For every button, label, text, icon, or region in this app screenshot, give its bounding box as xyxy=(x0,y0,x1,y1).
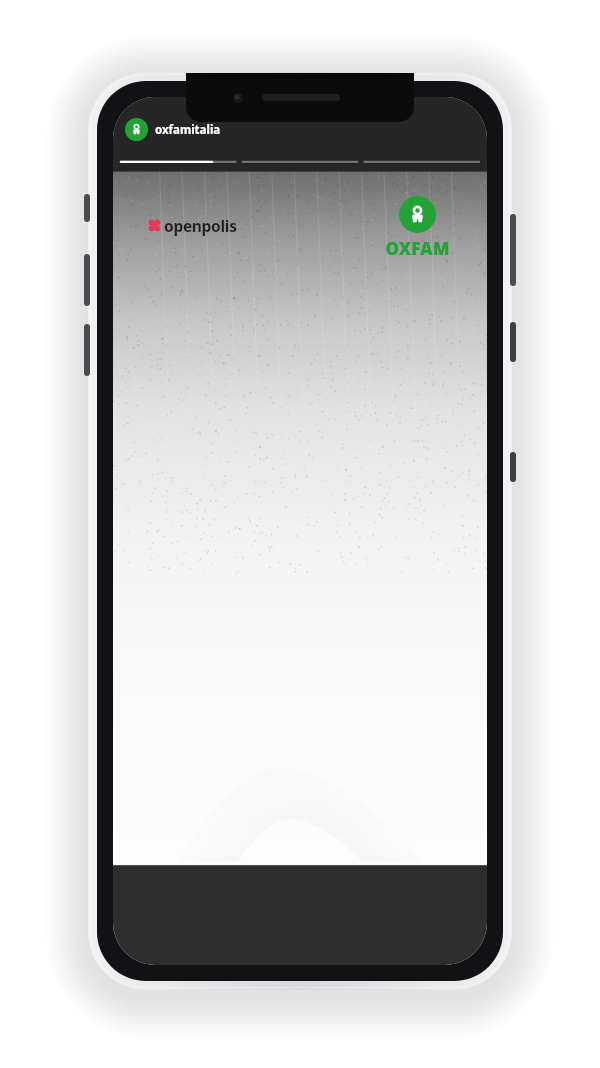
button[interactable]: Instagram story by oxfamitalia xyxy=(113,97,487,965)
staticText: OXFAM xyxy=(385,237,450,260)
button[interactable]: oxfamitalia xyxy=(121,115,225,144)
staticText: openpolis xyxy=(164,215,237,236)
staticText: oxfamitalia xyxy=(155,122,221,138)
